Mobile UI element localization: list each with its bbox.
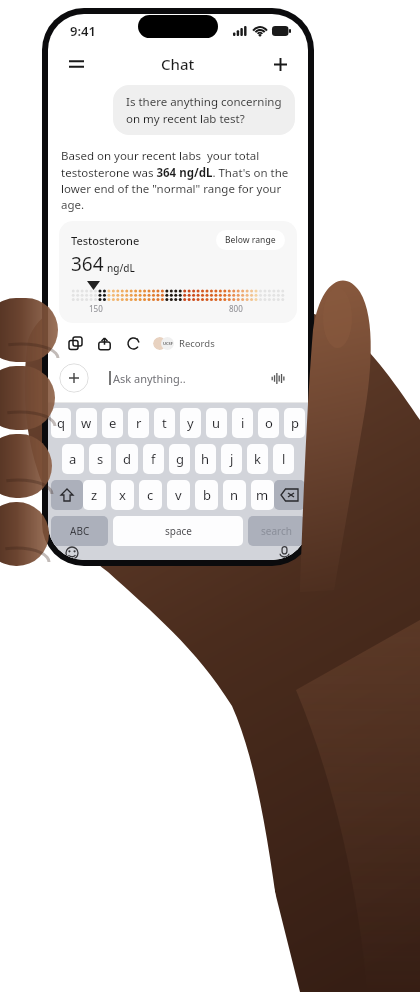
button[interactable]: c <box>139 480 162 510</box>
button[interactable]: s <box>89 444 111 474</box>
staticText: v <box>175 486 182 504</box>
button[interactable]: Is there anything concerning on my recen… <box>113 85 295 135</box>
staticText: Ask anything.. <box>113 371 186 386</box>
staticText: Chat <box>161 54 195 74</box>
staticText: c <box>147 486 154 504</box>
staticText: search <box>261 524 292 538</box>
staticText: k <box>254 450 261 468</box>
staticText: d <box>123 450 131 468</box>
button[interactable]: z <box>83 480 106 510</box>
staticText: 800 <box>229 303 243 314</box>
staticText: Testosterone <box>71 233 140 248</box>
button[interactable]: n <box>223 480 246 510</box>
button[interactable]: y <box>180 408 201 438</box>
button[interactable]: Delete <box>274 480 305 510</box>
button[interactable]: x <box>111 480 134 510</box>
staticText: m <box>256 486 269 504</box>
staticText: p <box>291 414 299 432</box>
staticText: Below range <box>225 234 276 246</box>
button[interactable]: a <box>62 444 84 474</box>
staticText: u <box>212 414 221 432</box>
button[interactable]: Dictate <box>273 546 295 560</box>
button[interactable]: u <box>206 408 227 438</box>
staticText: x <box>119 486 126 504</box>
button[interactable]: r <box>128 408 149 438</box>
button[interactable]: UCSF <box>153 337 219 350</box>
button[interactable]: t <box>154 408 175 438</box>
button[interactable]: Testosterone <box>59 221 297 323</box>
button[interactable]: space <box>113 516 243 546</box>
staticText: Is there anything concerning on my recen… <box>126 94 282 126</box>
button[interactable]: Copy <box>64 332 86 354</box>
button[interactable]: l <box>273 444 294 474</box>
staticText: n <box>230 486 239 504</box>
button[interactable]: w <box>76 408 97 438</box>
button[interactable]: ABC <box>51 516 108 546</box>
staticText: s <box>97 450 104 468</box>
button[interactable]: Shift <box>51 480 83 510</box>
staticText: ng/dL <box>107 261 135 275</box>
button[interactable]: h <box>195 444 216 474</box>
button[interactable]: q <box>51 408 71 438</box>
staticText: l <box>282 450 286 468</box>
staticText: Based on your recent labs your total tes… <box>61 148 295 212</box>
staticText: q <box>57 414 65 432</box>
staticText: a <box>69 450 77 468</box>
other: Voice <box>271 373 285 384</box>
button[interactable]: k <box>247 444 268 474</box>
staticText: o <box>265 414 273 432</box>
button[interactable]: Add <box>59 363 89 393</box>
button[interactable]: j <box>221 444 242 474</box>
staticText: j <box>230 450 234 468</box>
button[interactable]: m <box>251 480 274 510</box>
button[interactable]: o <box>258 408 279 438</box>
staticText: 150 <box>89 303 103 314</box>
button[interactable]: Ask anything.. <box>97 362 297 394</box>
button[interactable]: d <box>116 444 138 474</box>
button[interactable]: g <box>169 444 190 474</box>
button[interactable]: f <box>143 444 164 474</box>
button[interactable]: v <box>167 480 190 510</box>
staticText: b <box>203 486 211 504</box>
staticText: r <box>136 414 142 432</box>
staticText: g <box>176 450 184 468</box>
button[interactable]: p <box>284 408 305 438</box>
staticText: e <box>109 414 117 432</box>
staticText: w <box>81 414 92 432</box>
button[interactable]: Menu <box>61 49 91 79</box>
staticText: ABC <box>70 524 90 538</box>
button[interactable]: New chat <box>265 49 295 79</box>
staticText: UCSF <box>163 341 173 346</box>
button[interactable]: Share <box>93 332 115 354</box>
button[interactable]: i <box>232 408 253 438</box>
button[interactable]: Emoji <box>61 546 83 560</box>
button[interactable]: e <box>102 408 123 438</box>
staticText: i <box>241 414 245 432</box>
staticText: 364 <box>71 251 104 277</box>
staticText: f <box>151 450 156 468</box>
staticText: y <box>187 414 194 432</box>
staticText: t <box>162 414 167 432</box>
button[interactable]: Regenerate <box>122 332 144 354</box>
staticText: 9:41 <box>70 22 96 40</box>
staticText: space <box>165 524 192 538</box>
button[interactable]: b <box>195 480 218 510</box>
staticText: Records <box>179 337 215 350</box>
staticText: z <box>91 486 98 504</box>
staticText: h <box>201 450 210 468</box>
button[interactable]: search <box>248 516 305 546</box>
